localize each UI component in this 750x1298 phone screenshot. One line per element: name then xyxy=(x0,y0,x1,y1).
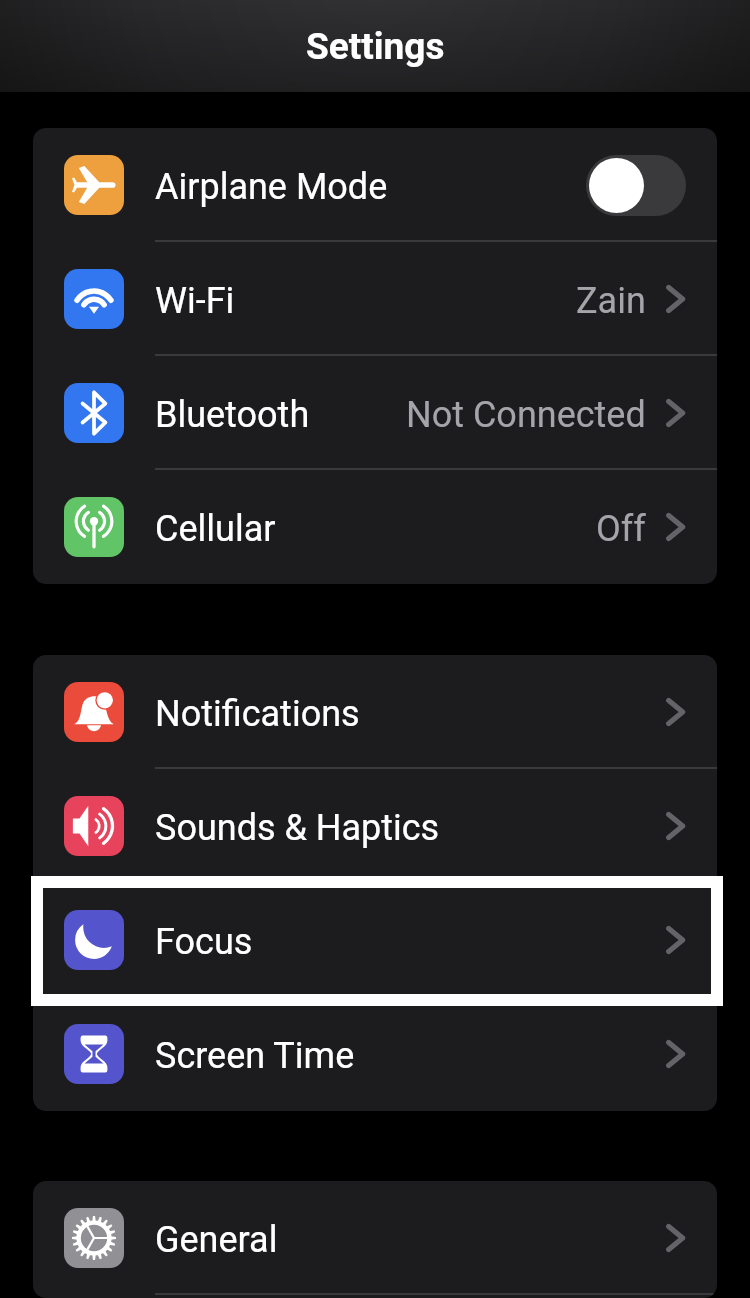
button[interactable]: Screen Time xyxy=(33,997,717,1111)
button[interactable]: Sounds & Haptics xyxy=(33,769,717,883)
button[interactable]: Wi-Fi xyxy=(33,242,717,356)
other: Open xyxy=(667,926,684,954)
other: Open xyxy=(667,285,684,313)
staticText: Bluetooth xyxy=(155,394,310,436)
staticText: Cellular xyxy=(155,508,276,550)
button[interactable]: Airplane Mode xyxy=(33,128,717,242)
button[interactable]: Airplane Mode toggle, off xyxy=(586,155,686,216)
button[interactable]: Cellular xyxy=(33,470,717,584)
staticText: Notifications xyxy=(155,693,360,735)
staticText: Screen Time xyxy=(155,1035,355,1077)
staticText: Airplane Mode xyxy=(155,166,388,208)
staticText: Wi-Fi xyxy=(155,280,235,322)
other: Open xyxy=(667,698,684,726)
other: Open xyxy=(667,1224,684,1252)
staticText: Off xyxy=(596,508,646,550)
staticText: Zain xyxy=(576,280,646,322)
other: Open xyxy=(667,399,684,427)
staticText: General xyxy=(155,1219,278,1261)
button[interactable]: General xyxy=(33,1181,717,1295)
other: Open xyxy=(667,513,684,541)
button[interactable]: Bluetooth xyxy=(33,356,717,470)
staticText: Focus xyxy=(155,921,253,963)
staticText: Sounds & Haptics xyxy=(155,807,440,849)
staticText: Not Connected xyxy=(406,394,646,436)
other: Open xyxy=(667,812,684,840)
button[interactable]: Notifications xyxy=(33,655,717,769)
other: Open xyxy=(667,1040,684,1068)
button[interactable]: Focus xyxy=(33,883,717,997)
staticText: Settings xyxy=(306,25,445,68)
